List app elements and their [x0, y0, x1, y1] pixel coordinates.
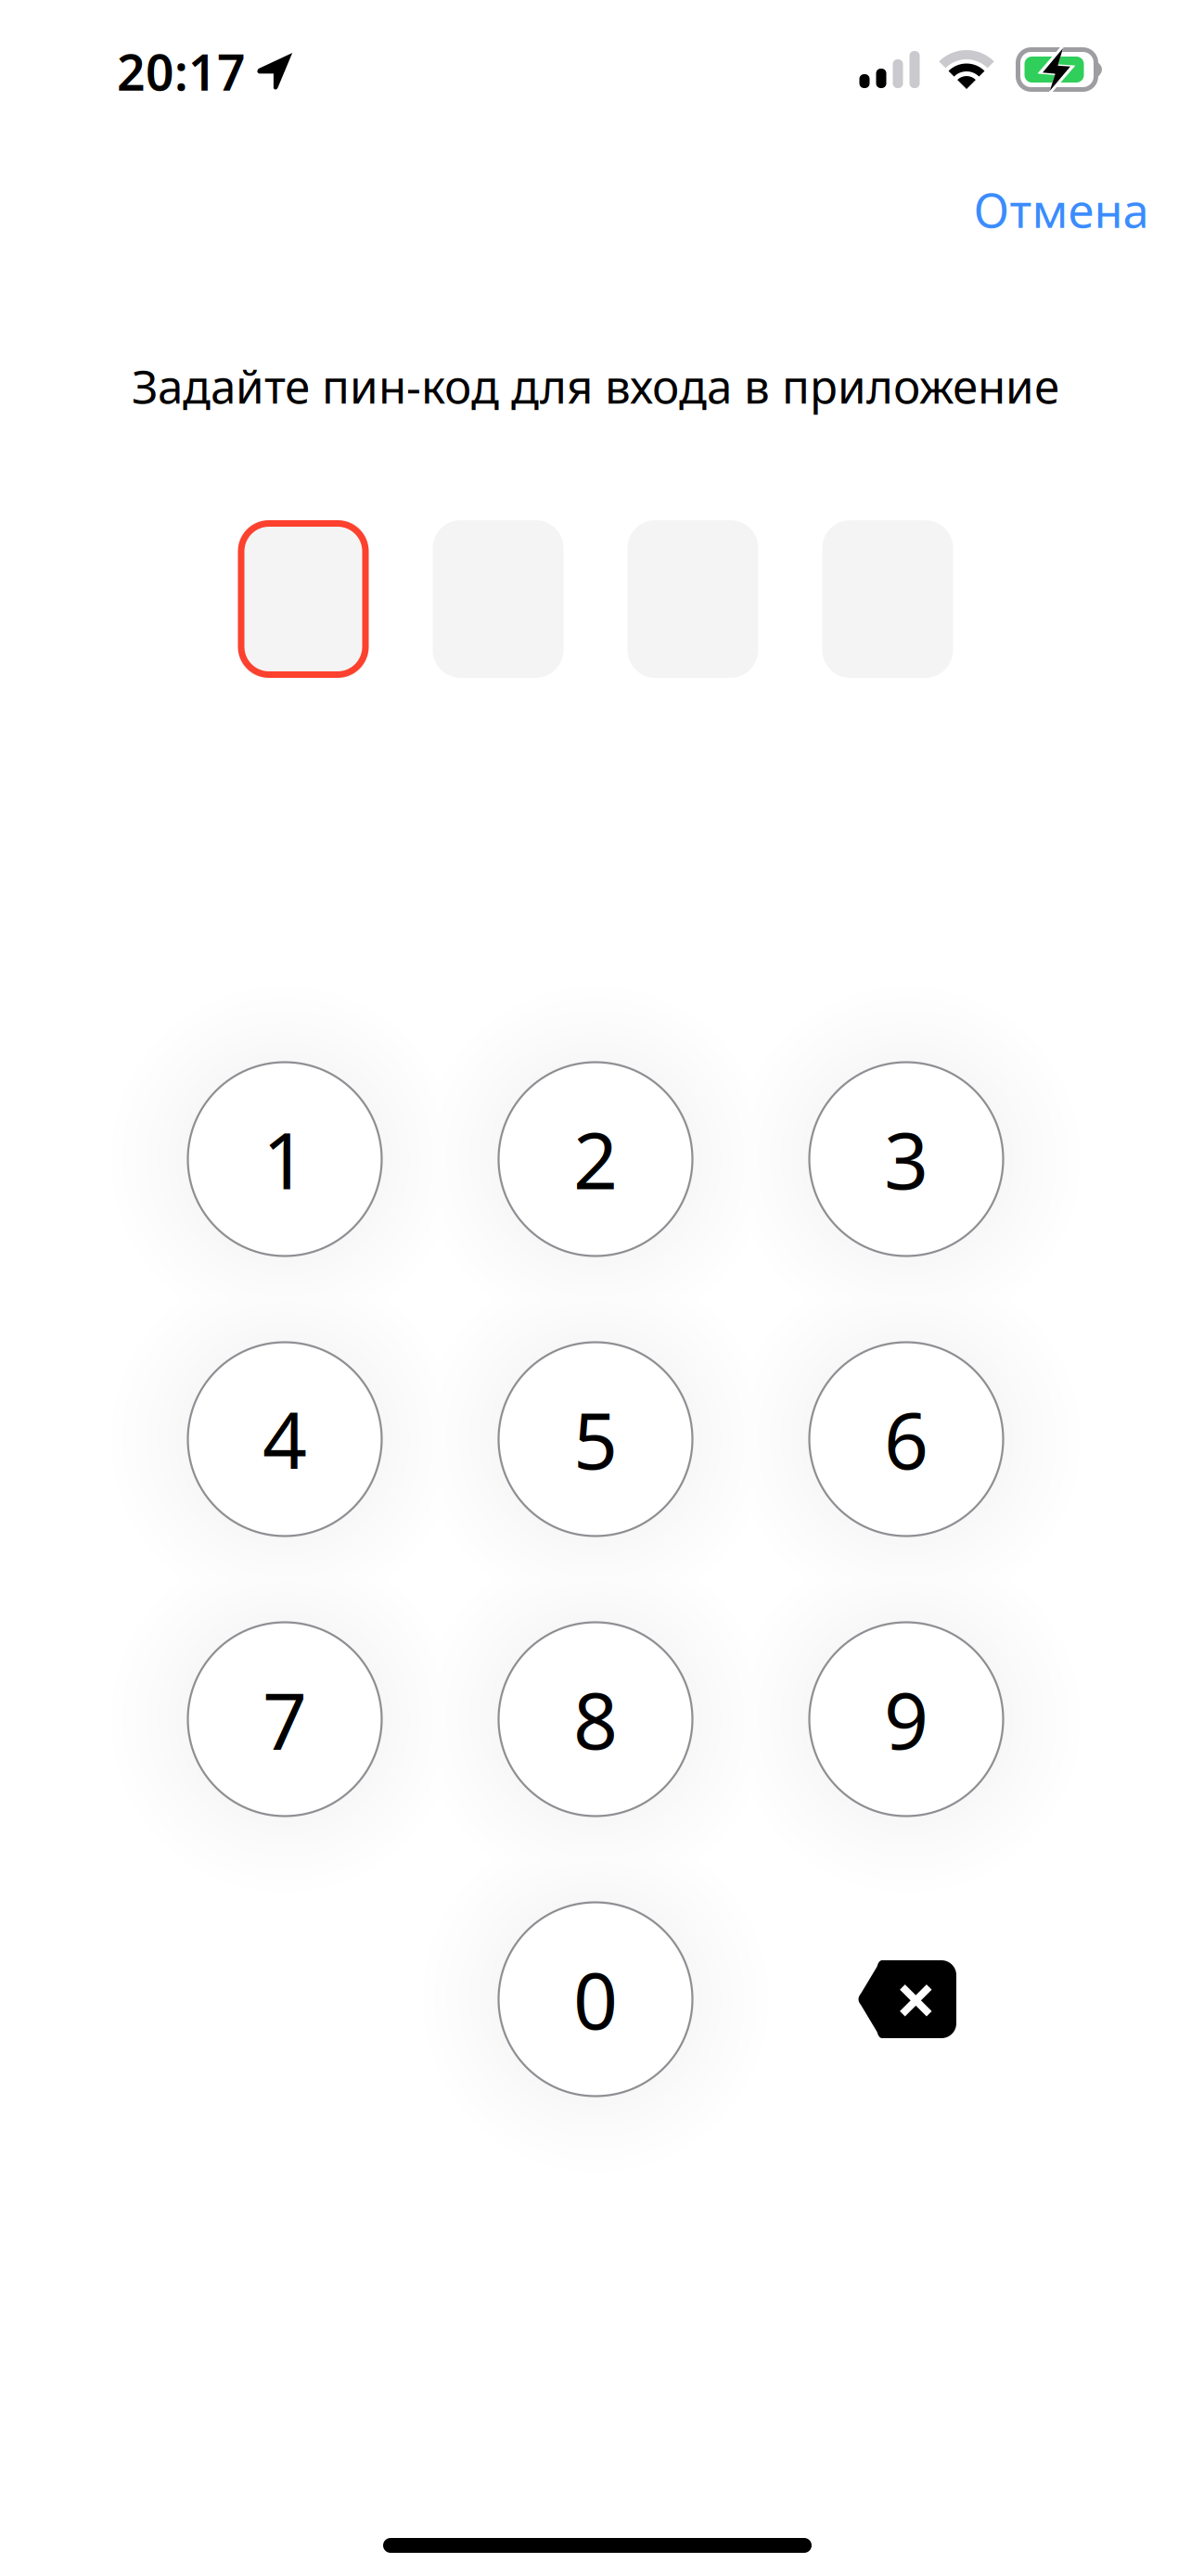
staticText: 20:17: [117, 39, 246, 104]
button[interactable]: 6: [809, 1342, 1003, 1536]
staticText: 1: [263, 1107, 307, 1211]
button[interactable]: 2: [499, 1062, 692, 1256]
staticText: 2: [573, 1107, 618, 1211]
button[interactable]: 5: [499, 1342, 692, 1536]
button[interactable]: 7: [188, 1622, 382, 1816]
staticText: 8: [573, 1667, 618, 1771]
button[interactable]: 3: [809, 1062, 1003, 1256]
button[interactable]: 8: [499, 1622, 692, 1816]
button[interactable]: 4: [188, 1342, 382, 1536]
staticText: 3: [884, 1107, 928, 1211]
button[interactable]: 9: [809, 1622, 1003, 1816]
button[interactable]: Отмена: [954, 165, 1168, 254]
staticText: Отмена: [973, 178, 1149, 241]
staticText: Задайте пин-код для входа в приложение: [132, 355, 1059, 416]
staticText: 4: [263, 1387, 307, 1491]
staticText: 5: [573, 1387, 618, 1491]
button[interactable]: 1: [188, 1062, 382, 1256]
staticText: 6: [884, 1387, 928, 1491]
staticText: 0: [573, 1947, 618, 2051]
button[interactable]: Delete: [809, 1902, 1003, 2096]
button[interactable]: 0: [499, 1902, 692, 2096]
staticText: 7: [263, 1667, 307, 1771]
staticText: 9: [884, 1667, 928, 1771]
